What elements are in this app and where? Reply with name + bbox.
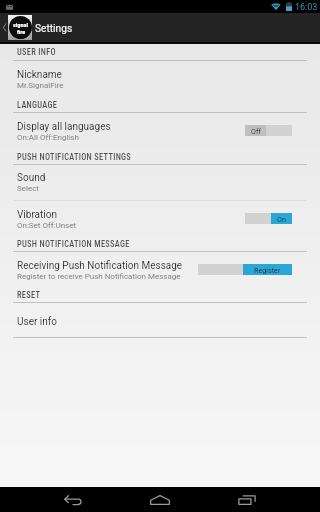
staticText: On:Set Off:Unset — [17, 221, 77, 230]
button[interactable]: On — [245, 213, 292, 224]
staticText: Select — [17, 184, 39, 193]
button[interactable]: User info — [0, 303, 320, 337]
staticText: User info — [17, 316, 57, 328]
staticText: Register — [254, 266, 281, 274]
staticText: Register to receive Push Notification Me… — [17, 272, 181, 281]
button[interactable]: Recent apps — [219, 487, 275, 512]
button[interactable]: Receiving Push Notification Message — [0, 252, 320, 288]
button[interactable]: Navigate up — [0, 13, 32, 42]
button[interactable]: Off — [245, 125, 292, 136]
staticText: RESET — [17, 290, 41, 300]
staticText: PUSH NOTIFICATION SETTINGS — [17, 152, 132, 162]
staticText: Receiving Push Notification Message — [17, 260, 183, 272]
staticText: Vibration — [17, 209, 57, 221]
button[interactable]: Home — [132, 487, 188, 512]
staticText: Settings — [35, 23, 73, 35]
staticText: PUSH NOTIFICATION MESSAGE — [17, 239, 130, 249]
staticText: Off — [251, 127, 261, 135]
button[interactable]: Sound — [0, 165, 320, 200]
button[interactable]: Display all languages — [0, 113, 320, 149]
staticText: 16:03 — [295, 2, 318, 13]
staticText: USER INFO — [17, 47, 56, 57]
staticText: fire — [17, 28, 26, 35]
staticText: On:All Off:English — [17, 133, 79, 142]
staticText: signal — [13, 21, 29, 28]
button[interactable]: Register — [198, 264, 292, 275]
staticText: Mr.SignalFire — [17, 81, 64, 90]
staticText: On — [277, 215, 286, 223]
button[interactable]: Vibration — [0, 201, 320, 237]
button[interactable]: Nickname — [0, 61, 320, 97]
staticText: Nickname — [17, 69, 62, 81]
button[interactable]: Back — [45, 487, 101, 512]
staticText: Display all languages — [17, 121, 111, 133]
staticText: LANGUAGE — [17, 100, 58, 110]
staticText: Sound — [17, 172, 46, 184]
